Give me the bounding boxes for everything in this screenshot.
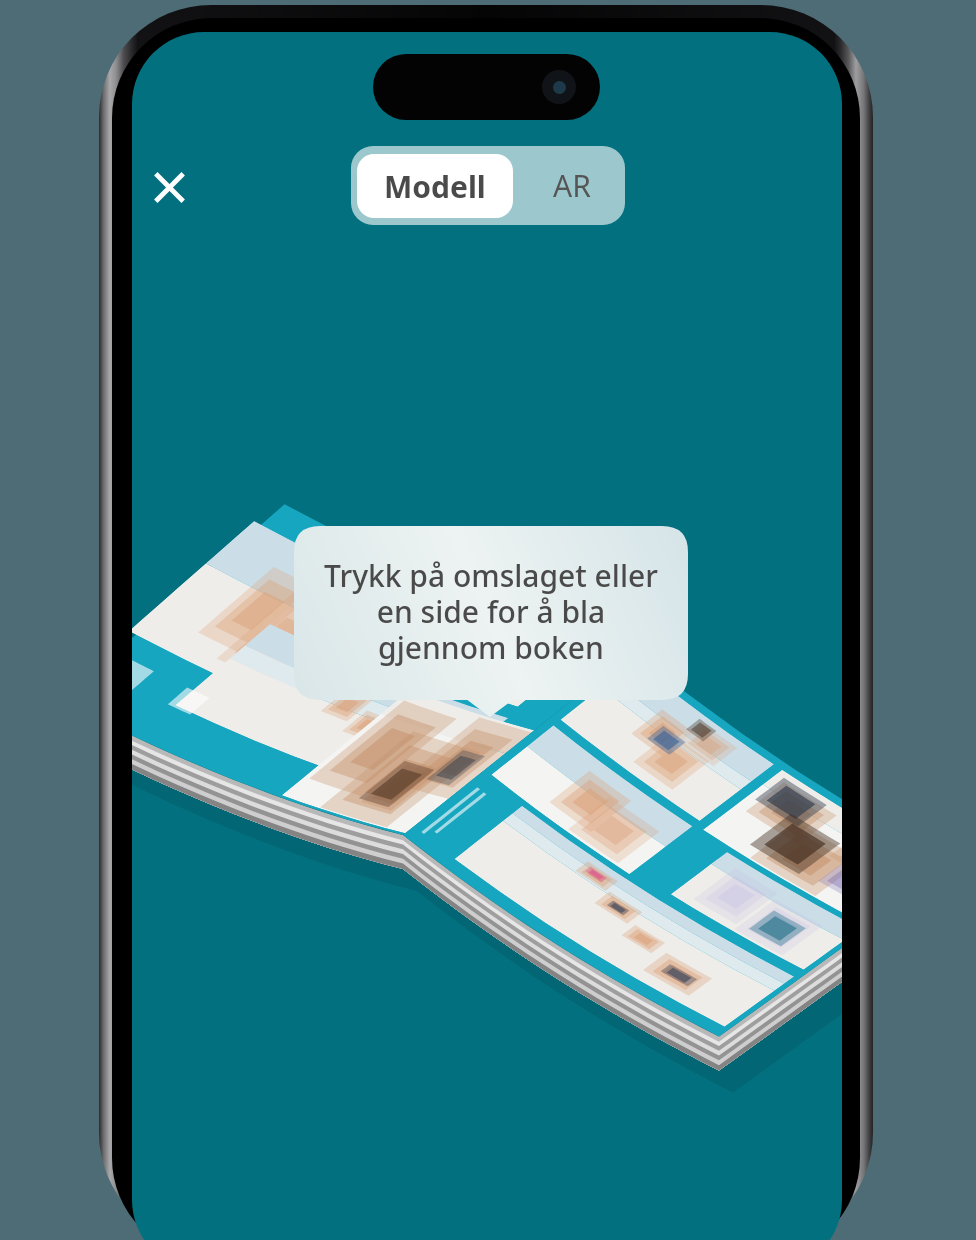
staticText: AR (553, 165, 591, 206)
button[interactable]: AR (519, 146, 625, 225)
button[interactable]: Modell (357, 154, 513, 218)
button[interactable]: Lukk (132, 141, 215, 233)
staticText: Modell (384, 166, 486, 207)
staticText: Trykk på omslaget eller en side for å bl… (294, 555, 688, 668)
